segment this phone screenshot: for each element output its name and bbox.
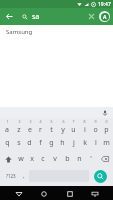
staticText: l — [95, 138, 97, 148]
staticText: 4 — [39, 119, 42, 124]
staticText: s — [17, 138, 21, 148]
staticText: 5 — [50, 119, 53, 124]
staticText: u — [71, 125, 76, 135]
button[interactable]: c — [37, 151, 49, 167]
button[interactable]: Search — [94, 170, 107, 183]
staticText: e — [28, 125, 32, 135]
staticText: , — [23, 172, 25, 180]
staticText: i — [84, 125, 86, 135]
button[interactable]: Shift — [1, 151, 15, 167]
staticText: 2 — [18, 119, 21, 124]
button[interactable]: ?123 — [2, 167, 19, 185]
staticText: v — [53, 154, 57, 164]
button[interactable]: Account — [99, 11, 110, 22]
button[interactable]: j — [68, 135, 79, 151]
staticText: 19:47 — [98, 1, 111, 8]
button[interactable]: 5 — [46, 118, 57, 135]
staticText: g — [49, 138, 54, 148]
button[interactable]: q — [1, 135, 13, 151]
button[interactable]: h — [57, 135, 68, 151]
staticText: t — [50, 125, 53, 135]
button[interactable]: ' — [85, 151, 97, 167]
staticText: f — [39, 138, 42, 148]
button[interactable]: g — [46, 135, 57, 151]
button[interactable]: , — [19, 167, 29, 185]
button[interactable]: Back — [3, 10, 16, 23]
button[interactable]: l — [90, 135, 101, 151]
button[interactable]: m — [101, 135, 112, 151]
button[interactable]: b — [61, 151, 73, 167]
staticText: q — [5, 138, 10, 148]
button[interactable]: Search — [19, 11, 30, 22]
button[interactable]: 0 — [101, 118, 112, 135]
button[interactable]: 4 — [35, 118, 46, 135]
button[interactable]: Clear — [86, 11, 97, 22]
staticText: o — [93, 125, 98, 135]
button[interactable]: Backspace — [97, 151, 112, 167]
button[interactable]: Hide keyboard — [88, 187, 101, 200]
button[interactable]: s — [13, 135, 24, 151]
staticText: 9 — [94, 119, 97, 124]
button[interactable]: 1 — [1, 118, 13, 135]
button[interactable]: Samsung — [0, 25, 113, 38]
staticText: w — [18, 154, 24, 164]
staticText: p — [104, 125, 109, 135]
staticText: j — [73, 138, 75, 148]
button[interactable]: f — [35, 135, 46, 151]
staticText: A — [103, 14, 107, 21]
staticText: ' — [90, 154, 92, 164]
staticText: 3 — [29, 119, 32, 124]
button[interactable]: 6 — [57, 118, 68, 135]
staticText: h — [60, 138, 65, 148]
staticText: k — [83, 138, 87, 148]
staticText: z — [17, 125, 21, 135]
button[interactable]: Back — [12, 187, 25, 200]
button[interactable]: d — [24, 135, 35, 151]
staticText: 0 — [105, 119, 108, 124]
button[interactable]: 9 — [90, 118, 101, 135]
staticText: d — [27, 138, 32, 148]
button[interactable]: 3 — [24, 118, 35, 135]
button[interactable]: 2 — [13, 118, 24, 135]
staticText: m — [103, 138, 110, 148]
staticText: sa — [32, 12, 40, 22]
button[interactable]: k — [79, 135, 90, 151]
staticText: x — [30, 154, 34, 164]
button[interactable]: Voice input — [100, 108, 109, 117]
button[interactable]: w — [15, 151, 26, 167]
staticText: y — [61, 125, 65, 135]
button[interactable]: x — [26, 151, 37, 167]
button[interactable]: 8 — [79, 118, 90, 135]
staticText: r — [39, 125, 42, 135]
button[interactable]: n — [73, 151, 85, 167]
staticText: 8 — [83, 119, 86, 124]
button[interactable]: 7 — [68, 118, 79, 135]
staticText: b — [65, 154, 70, 164]
staticText: 7 — [72, 119, 75, 124]
staticText: a — [5, 125, 9, 135]
button[interactable]: Recent apps — [63, 187, 76, 200]
staticText: ?123 — [6, 173, 16, 179]
button[interactable]: v — [49, 151, 61, 167]
button[interactable]: Home — [37, 187, 50, 200]
staticText: Samsung — [6, 28, 33, 36]
staticText: c — [41, 154, 45, 164]
staticText: n — [77, 154, 82, 164]
staticText: 1 — [6, 119, 9, 124]
staticText: 6 — [62, 119, 65, 124]
